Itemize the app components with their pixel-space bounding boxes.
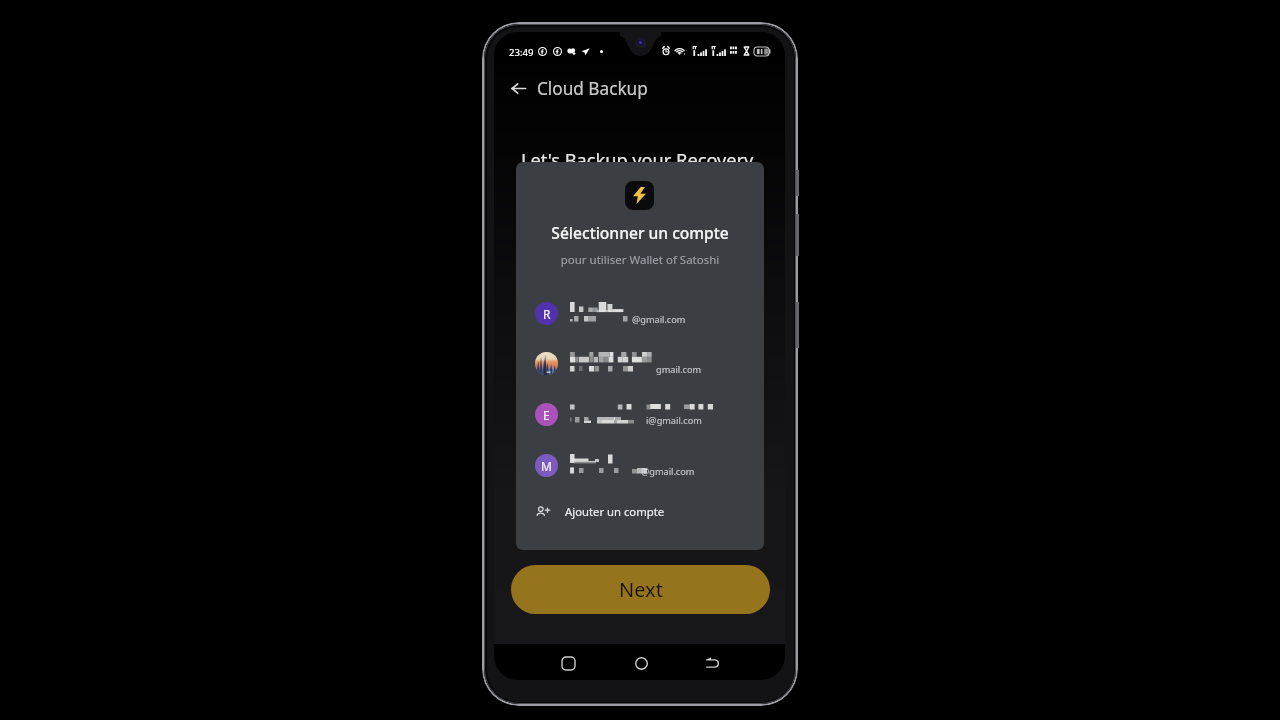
button[interactable]: M bbox=[516, 442, 764, 488]
button[interactable]: Recent apps bbox=[552, 647, 584, 679]
staticText: M bbox=[541, 458, 552, 474]
staticText: 23:49 bbox=[509, 46, 534, 59]
staticText: @gmail.com bbox=[641, 465, 695, 478]
staticText: gmail.com bbox=[656, 363, 702, 376]
button[interactable]: Home bbox=[625, 647, 657, 679]
staticText: Next bbox=[619, 576, 663, 603]
button[interactable]: Back bbox=[501, 71, 535, 105]
button[interactable]: R bbox=[516, 290, 764, 336]
staticText: i@gmail.com bbox=[646, 414, 702, 427]
staticText: @gmail.com bbox=[632, 313, 686, 326]
button[interactable]: Ajouter un compte bbox=[516, 493, 764, 529]
staticText: Ajouter un compte bbox=[565, 504, 665, 519]
button[interactable]: Next bbox=[511, 565, 770, 614]
staticText: Let's Backup your Recovery bbox=[521, 148, 754, 173]
button[interactable]: Back bbox=[696, 647, 728, 679]
staticText: Sélectionner un compte bbox=[516, 222, 764, 243]
staticText: pour utiliser Wallet of Satoshi bbox=[516, 252, 764, 268]
staticText: Cloud Backup bbox=[537, 77, 648, 100]
staticText: E bbox=[543, 407, 550, 423]
button[interactable]: E bbox=[516, 391, 764, 437]
staticText: R bbox=[543, 306, 551, 322]
button[interactable]: gmail.com bbox=[516, 340, 764, 386]
